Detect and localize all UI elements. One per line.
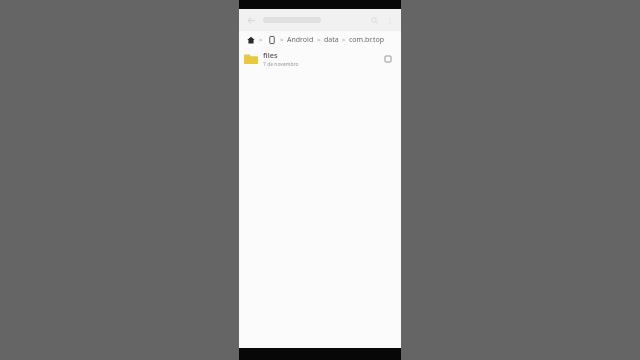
staticText: com.br.top xyxy=(349,35,385,45)
staticText: > xyxy=(280,36,284,44)
button[interactable]: files xyxy=(239,48,401,70)
button[interactable]: data xyxy=(324,35,339,45)
staticText: files xyxy=(263,50,278,60)
staticText: > xyxy=(317,36,321,44)
button[interactable]: Android xyxy=(287,35,314,45)
button[interactable]: Navigate up xyxy=(244,13,258,27)
button[interactable]: Home xyxy=(245,34,256,45)
staticText: > xyxy=(342,36,346,44)
button[interactable]: com.br.top xyxy=(349,35,385,45)
button[interactable]: Internal storage xyxy=(266,34,277,45)
staticText: Android xyxy=(287,35,314,45)
button[interactable]: Search xyxy=(368,14,381,27)
staticText: data xyxy=(324,35,339,45)
button[interactable]: Select files xyxy=(382,53,394,65)
staticText: 7 de novembro xyxy=(263,61,299,68)
staticText: > xyxy=(259,36,263,44)
